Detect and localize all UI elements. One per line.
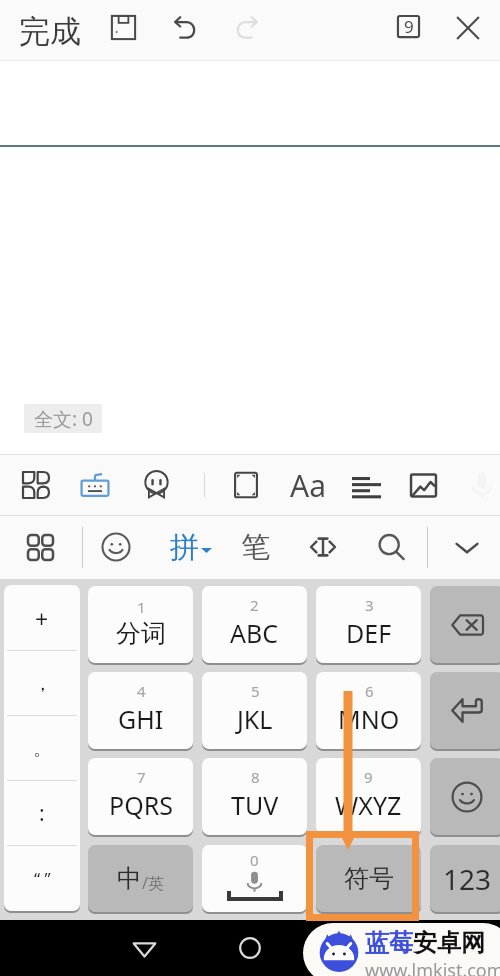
button[interactable] xyxy=(430,758,500,835)
button[interactable]: 4 xyxy=(88,672,193,749)
staticText: MNO xyxy=(338,702,400,736)
staticText: www.lmkjst.com xyxy=(365,958,500,976)
button[interactable]: Back xyxy=(122,926,166,970)
staticText: 完成 xyxy=(19,12,81,51)
button[interactable]: Image xyxy=(403,465,444,506)
button[interactable]: Keyboard layout xyxy=(22,529,59,566)
button[interactable]: + xyxy=(4,585,80,651)
button[interactable]: 全文: 0 xyxy=(24,404,102,433)
staticText: + xyxy=(35,603,49,634)
button[interactable]: Redo xyxy=(232,13,262,43)
staticText: 拼 xyxy=(170,529,199,566)
button[interactable]: Aa xyxy=(286,463,330,508)
staticText: : xyxy=(39,799,45,828)
staticText: 中 xyxy=(117,863,142,894)
button[interactable]: Recents xyxy=(338,926,382,970)
button[interactable]: Home xyxy=(228,926,272,970)
button[interactable]: 9 xyxy=(316,758,421,835)
staticText: 9 xyxy=(404,15,414,38)
staticText: “ ” xyxy=(34,867,51,890)
staticText: 3 xyxy=(365,595,374,615)
staticText: 8 xyxy=(251,767,260,787)
button[interactable] xyxy=(430,672,500,749)
button[interactable]: 6 xyxy=(316,672,421,749)
staticText: 蓝莓 xyxy=(365,928,413,958)
button[interactable] xyxy=(430,586,500,663)
staticText: JKL xyxy=(237,702,273,736)
button[interactable]: Paragraph xyxy=(346,465,387,506)
button[interactable]: 拼 xyxy=(164,524,218,571)
staticText: WXYZ xyxy=(335,788,402,822)
button[interactable]: 。 xyxy=(4,716,80,781)
staticText: ABC xyxy=(230,616,279,650)
staticText: 1 xyxy=(137,597,146,617)
button[interactable]: Hide keyboard xyxy=(448,528,486,566)
button[interactable]: Close xyxy=(453,13,483,43)
button[interactable]: Emoji xyxy=(95,526,137,568)
button[interactable]: 7 xyxy=(88,758,193,835)
button[interactable]: 中 xyxy=(88,845,193,912)
staticText: 0 xyxy=(250,850,259,870)
button[interactable]: 123 xyxy=(430,845,500,912)
button[interactable]: 3 xyxy=(316,586,421,663)
staticText: 分词 xyxy=(116,618,166,649)
staticText: 笔 xyxy=(241,529,270,566)
button[interactable]: 笔 xyxy=(233,524,277,571)
staticText: 9 xyxy=(364,767,373,787)
button[interactable]: Frame xyxy=(226,465,266,505)
button[interactable]: Page 9 xyxy=(393,11,424,42)
button[interactable]: 2 xyxy=(202,586,307,663)
staticText: /英 xyxy=(142,872,164,894)
staticText: GHI xyxy=(118,702,164,736)
button[interactable]: 5 xyxy=(202,672,307,749)
staticText: 安卓网 xyxy=(413,928,485,958)
button[interactable]: 0 xyxy=(202,845,307,912)
button[interactable]: Sticker xyxy=(134,463,179,508)
staticText: 5 xyxy=(251,681,260,701)
button[interactable]: Save xyxy=(109,13,138,42)
button[interactable]: 符号 xyxy=(316,845,421,912)
staticText: 。 xyxy=(33,737,52,761)
staticText: 123 xyxy=(443,860,492,898)
button[interactable]: Apps xyxy=(17,466,55,504)
button[interactable]: Undo xyxy=(170,13,200,43)
staticText: DEF xyxy=(346,616,392,650)
button[interactable]: Search xyxy=(371,527,412,568)
staticText: ， xyxy=(33,672,52,696)
button[interactable]: Move cursor xyxy=(302,526,344,568)
staticText: TUV xyxy=(231,788,279,822)
staticText: 2 xyxy=(250,595,259,615)
staticText: 6 xyxy=(365,681,374,701)
button[interactable]: Keyboard xyxy=(73,463,117,507)
button[interactable]: “ ” xyxy=(4,846,80,911)
button[interactable]: 完成 xyxy=(10,5,90,57)
staticText: Aa xyxy=(290,465,326,506)
staticText: PQRS xyxy=(109,788,173,822)
staticText: 4 xyxy=(137,681,146,701)
button[interactable]: : xyxy=(4,781,80,846)
staticText: 符号 xyxy=(344,863,394,894)
button[interactable]: 1 xyxy=(88,586,193,663)
button[interactable]: ， xyxy=(4,651,80,716)
button[interactable]: 8 xyxy=(202,758,307,835)
staticText: 7 xyxy=(137,767,146,787)
staticText: 全文: 0 xyxy=(34,406,93,432)
